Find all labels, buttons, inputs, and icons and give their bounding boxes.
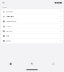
staticText: Help: [6, 35, 9, 37]
button[interactable]: Appearance: [1, 19, 63, 24]
button[interactable]: Home: [0, 60, 21, 67]
staticText: Label: [2, 7, 6, 8]
staticText: Storage: [6, 30, 12, 32]
staticText: Account: [6, 11, 12, 13]
button[interactable]: Settings: [43, 60, 64, 67]
button[interactable]: Storage: [1, 29, 63, 33]
staticText: Notifications: [6, 16, 14, 17]
button[interactable]: Search: [21, 60, 43, 67]
staticText: About: [6, 40, 10, 42]
button[interactable]: About: [1, 39, 63, 43]
staticText: Privacy: [6, 25, 12, 27]
button[interactable]: Account: [1, 9, 63, 14]
button[interactable]: Help: [1, 34, 63, 38]
button[interactable]: Notifications: [1, 14, 63, 19]
button[interactable]: Privacy: [1, 24, 63, 29]
staticText: Appearance: [6, 20, 16, 22]
staticText: 9:41: [2, 2, 5, 4]
